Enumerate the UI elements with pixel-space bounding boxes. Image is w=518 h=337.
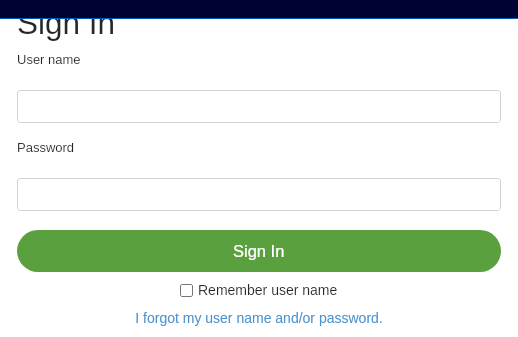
button[interactable]: Remember user name	[180, 282, 338, 298]
staticText: User name	[17, 52, 81, 67]
button[interactable]: User name input field	[17, 90, 501, 123]
button[interactable]: Password input field	[17, 178, 501, 211]
staticText: Sign In	[233, 242, 285, 260]
button[interactable]: Sign In	[17, 230, 501, 272]
button[interactable]: I forgot my user name and/or password.	[135, 310, 383, 326]
staticText: Sign In	[17, 5, 116, 40]
staticText: Password	[17, 140, 75, 155]
staticText: Remember user name	[198, 282, 338, 298]
